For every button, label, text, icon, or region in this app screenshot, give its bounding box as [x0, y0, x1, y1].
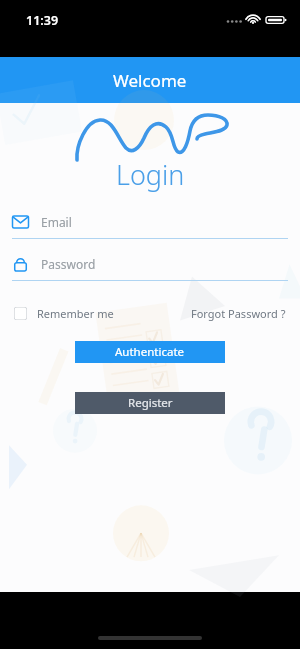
- staticText: Welcome: [113, 69, 187, 92]
- button[interactable]: Email: [12, 211, 288, 239]
- button[interactable]: Remember me: [14, 306, 120, 321]
- staticText: Password: [41, 256, 96, 272]
- staticText: Login: [116, 156, 185, 193]
- button[interactable]: Password: [12, 253, 288, 281]
- other: Password: [12, 256, 29, 272]
- staticText: Remember me: [37, 306, 114, 321]
- staticText: 11:39: [26, 12, 59, 29]
- staticText: Register: [128, 395, 173, 411]
- staticText: Authenticate: [115, 344, 185, 360]
- button[interactable]: Authenticate: [75, 341, 225, 363]
- staticText: Forgot Password ?: [191, 306, 286, 321]
- staticText: Email: [41, 214, 72, 230]
- button[interactable]: Forgot Password ?: [191, 306, 286, 321]
- other: Email: [12, 214, 29, 230]
- button[interactable]: Register: [75, 392, 225, 414]
